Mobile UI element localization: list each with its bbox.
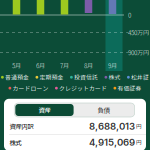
staticText: -450万円 (126, 28, 149, 37)
button[interactable]: 株式 (4, 135, 146, 149)
button[interactable]: 資産 (15, 104, 74, 116)
staticText: 資産 (38, 105, 50, 115)
staticText: クレジットカード (59, 84, 107, 92)
staticText: 有価証券 (117, 84, 141, 92)
staticText: 9月 (108, 61, 117, 70)
staticText: 定期預金 (39, 73, 63, 81)
staticText: 6月 (36, 61, 45, 70)
staticText: 0 (128, 11, 131, 19)
staticText: カードローン (12, 84, 48, 92)
button[interactable]: 資産内訳 (4, 119, 146, 133)
staticText: 7月 (60, 61, 69, 70)
staticText: 投資信託 (74, 73, 98, 81)
staticText: 株式 (108, 73, 120, 81)
staticText: 4,915,069 (89, 136, 135, 148)
staticText: 松井証 (131, 73, 149, 81)
staticText: 円 (135, 122, 142, 130)
button[interactable]: 負債 (74, 104, 133, 116)
staticText: 円 (135, 138, 142, 146)
staticText: 普通預金 (5, 73, 29, 81)
staticText: -900万円 (126, 48, 149, 57)
staticText: 負債 (98, 105, 110, 115)
staticText: 株式 (9, 138, 21, 147)
staticText: 5月 (12, 61, 21, 70)
staticText: 8,688,013 (89, 120, 135, 132)
staticText: 8月 (84, 61, 93, 70)
staticText: 資産内訳 (9, 122, 33, 131)
